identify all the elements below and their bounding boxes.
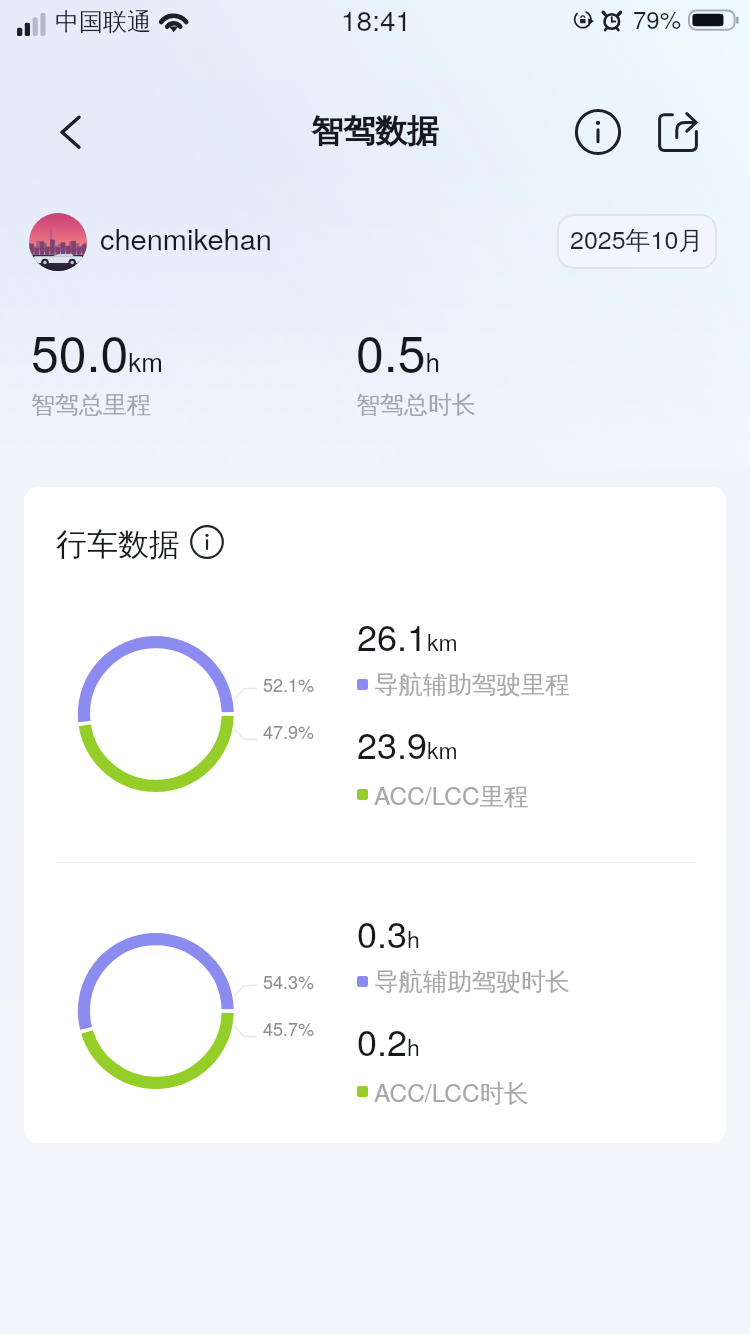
staticText: chenmikehan xyxy=(100,217,272,259)
staticText: 45.7% xyxy=(263,1015,315,1041)
staticText: 47.9% xyxy=(263,718,315,744)
staticText: 0.3h xyxy=(357,907,420,959)
button[interactable]: 行车数据 xyxy=(56,525,224,564)
staticText: 26.1km xyxy=(357,610,458,662)
staticText: 导航辅助驾驶时长 xyxy=(374,966,570,997)
staticText: 0.5h xyxy=(356,315,440,387)
staticText: 52.1% xyxy=(263,671,315,697)
staticText: 79% xyxy=(633,1,682,35)
staticText: 23.9km xyxy=(357,718,458,770)
staticText: 行车数据 xyxy=(56,525,180,564)
staticText: ACC/LCC里程 xyxy=(374,777,529,812)
button[interactable]: 2025年10月 xyxy=(557,214,717,269)
staticText: 18:41 xyxy=(341,0,412,39)
staticText: 智驾总里程 xyxy=(31,390,151,420)
staticText: 0.2h xyxy=(357,1015,420,1067)
button[interactable]: Back xyxy=(46,108,94,156)
staticText: 智驾总时长 xyxy=(356,390,476,420)
button[interactable]: Share xyxy=(656,110,700,154)
staticText: 中国联通 xyxy=(55,7,151,37)
staticText: 50.0km xyxy=(31,315,163,387)
staticText: 54.3% xyxy=(263,968,315,994)
staticText: ACC/LCC时长 xyxy=(374,1074,529,1109)
staticText: 2025年10月 xyxy=(570,220,704,256)
staticText: 导航辅助驾驶里程 xyxy=(374,669,570,700)
staticText: 智驾数据 xyxy=(311,111,439,151)
button[interactable]: Info xyxy=(573,107,623,157)
